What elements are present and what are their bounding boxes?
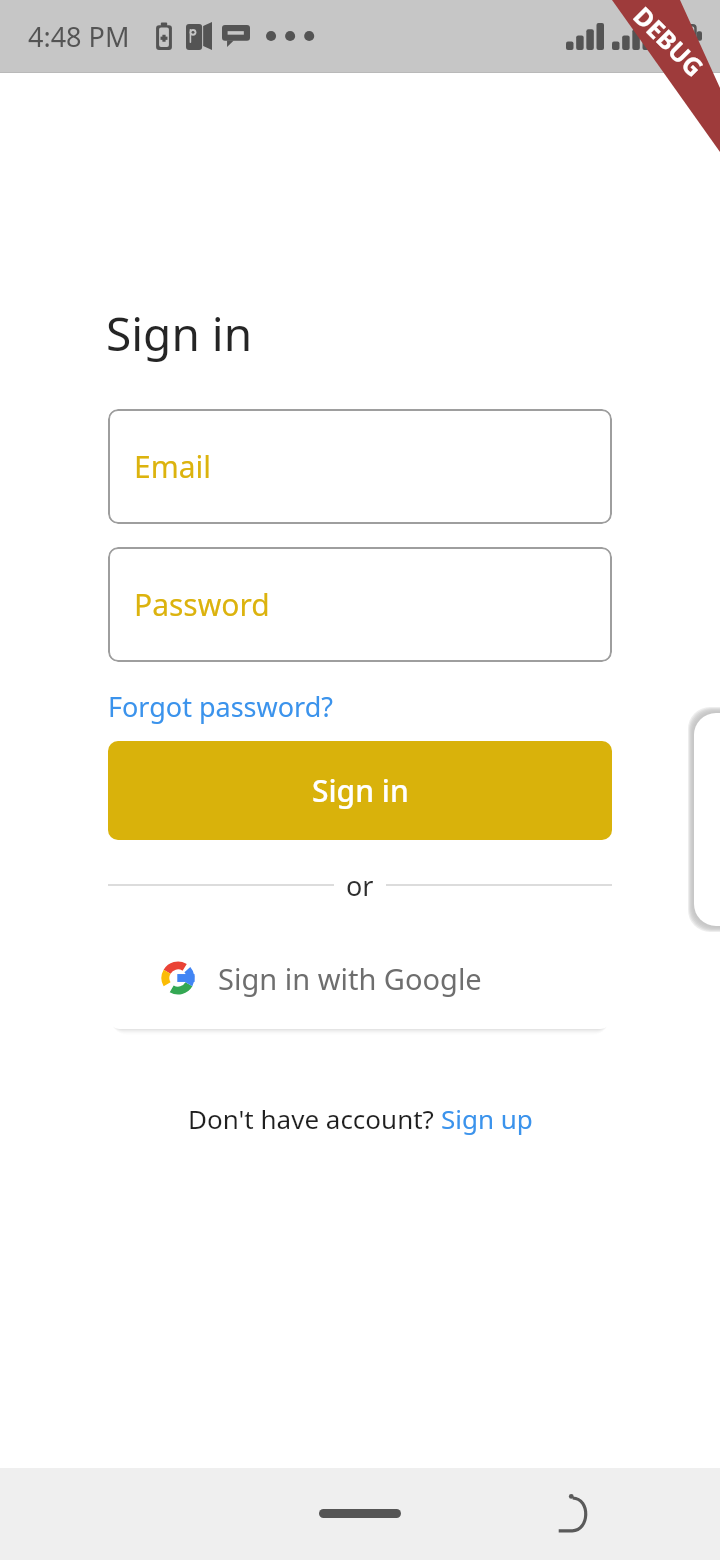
staticText: DEBUG — [627, 0, 711, 83]
button[interactable]: Sign in — [108, 741, 612, 840]
staticText: Email — [134, 446, 212, 487]
staticText: Sign up — [441, 1101, 533, 1136]
staticText: Password — [134, 584, 270, 625]
button[interactable]: Sign up — [441, 1101, 533, 1136]
button[interactable]: Back — [545, 1482, 603, 1546]
button[interactable]: Password — [108, 547, 612, 662]
button[interactable]: Forgot password? — [108, 688, 334, 725]
staticText: Don't have account? — [188, 1101, 441, 1136]
button[interactable]: Home — [305, 1487, 415, 1540]
button[interactable]: Email — [108, 409, 612, 524]
staticText: Sign in — [106, 302, 253, 365]
button[interactable]: Sign in with Google — [108, 927, 612, 1029]
staticText: Sign in — [312, 770, 409, 811]
staticText: 4:48 PM — [28, 18, 130, 55]
staticText: or — [346, 867, 374, 904]
staticText: Sign in with Google — [218, 959, 482, 998]
staticText: Forgot password? — [108, 688, 334, 725]
